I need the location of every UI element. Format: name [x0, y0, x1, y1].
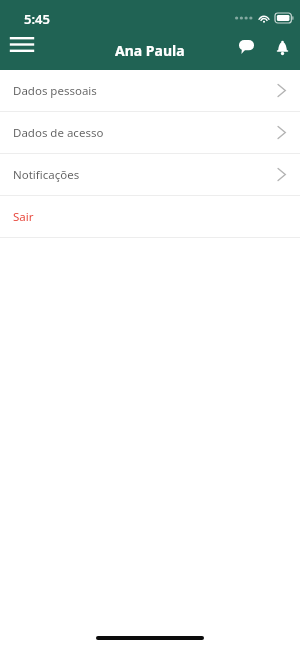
button[interactable]: Dados pessoais — [0, 70, 300, 111]
staticText: Ana Paula — [115, 41, 185, 60]
button[interactable]: Menu — [0, 26, 44, 62]
staticText: Notificações — [13, 167, 80, 183]
button[interactable]: Dados de acesso — [0, 112, 300, 153]
button[interactable]: Notifications — [264, 30, 300, 64]
button[interactable]: Notificações — [0, 154, 300, 195]
staticText: 5:45 — [24, 10, 50, 28]
button[interactable]: Sair — [0, 196, 300, 237]
staticText: Dados pessoais — [13, 83, 97, 99]
staticText: Sair — [13, 209, 34, 225]
button[interactable]: Messages — [228, 30, 264, 64]
staticText: Dados de acesso — [13, 125, 104, 141]
